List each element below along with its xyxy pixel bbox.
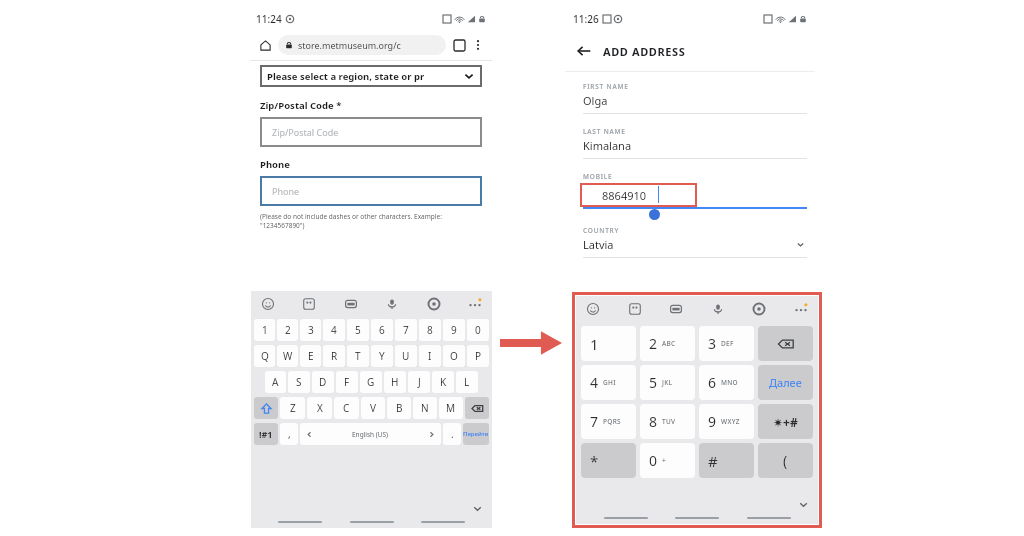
button[interactable]: 7 <box>395 319 417 341</box>
button[interactable]: Settings <box>750 300 768 318</box>
staticText: Z <box>290 401 296 415</box>
button[interactable]: M <box>439 397 463 419</box>
button[interactable]: , <box>280 423 298 445</box>
button[interactable]: ( <box>758 443 813 478</box>
button[interactable]: 5 <box>640 365 695 400</box>
staticText: 1 <box>590 334 599 354</box>
staticText: store.metmuseum.org/c <box>298 39 401 51</box>
button[interactable]: Emoji <box>584 300 602 318</box>
staticText: F <box>344 375 350 389</box>
button[interactable]: 1 <box>581 326 636 361</box>
button[interactable]: Stickers <box>626 300 644 318</box>
button[interactable]: 2 <box>640 326 695 361</box>
button[interactable]: G <box>360 371 382 393</box>
button[interactable]: Nav <box>421 521 465 523</box>
button[interactable]: 8 <box>419 319 441 341</box>
button[interactable]: S <box>288 371 310 393</box>
button[interactable]: * <box>581 443 636 478</box>
staticText: . <box>451 427 454 441</box>
button[interactable]: T <box>347 345 369 367</box>
button[interactable]: 3 <box>699 326 754 361</box>
staticText: Phone <box>272 185 300 197</box>
button[interactable]: !#1 <box>254 423 278 445</box>
button[interactable]: Emoji <box>259 295 277 313</box>
button[interactable]: Hide keyboard <box>796 497 810 511</box>
button[interactable]: V <box>361 397 385 419</box>
button[interactable]: Phone <box>260 176 482 206</box>
button[interactable]: Nav <box>747 517 791 519</box>
button[interactable]: store.metmuseum.org/c <box>278 35 446 55</box>
staticText: B <box>396 401 403 415</box>
button[interactable]: U <box>395 345 417 367</box>
button[interactable]: F <box>336 371 358 393</box>
button[interactable]: Stickers <box>300 295 318 313</box>
button[interactable]: B <box>387 397 411 419</box>
button[interactable]: Nav <box>604 517 648 519</box>
button[interactable]: 7 <box>581 404 636 439</box>
button[interactable]: I <box>419 345 441 367</box>
button[interactable]: Backspace <box>758 326 813 361</box>
button[interactable]: Далее <box>758 365 813 400</box>
button[interactable]: ✷+# <box>758 404 813 439</box>
button[interactable]: Q <box>254 345 275 367</box>
button[interactable]: Back <box>573 40 595 62</box>
button[interactable]: R <box>323 345 345 367</box>
button[interactable]: Home <box>256 36 274 54</box>
button[interactable]: P <box>467 345 489 367</box>
button[interactable]: 9 <box>443 319 465 341</box>
button[interactable]: More <box>466 295 484 313</box>
button[interactable]: Zip/Postal Code <box>260 117 482 147</box>
button[interactable]: 9 <box>699 404 754 439</box>
staticText: 0 <box>475 323 481 337</box>
button[interactable]: W <box>277 345 298 367</box>
button[interactable]: 4 <box>323 319 345 341</box>
button[interactable]: J <box>408 371 430 393</box>
button[interactable]: K <box>432 371 454 393</box>
button[interactable]: O <box>443 345 465 367</box>
button[interactable]: Tabs <box>451 37 467 53</box>
button[interactable]: Shift <box>254 397 278 419</box>
staticText: 8 <box>427 323 433 337</box>
button[interactable]: L <box>456 371 478 393</box>
button[interactable]: Voice input <box>709 300 727 318</box>
staticText: MNO <box>721 378 739 387</box>
button[interactable]: 3 <box>300 319 321 341</box>
button[interactable]: Nav <box>350 521 394 523</box>
staticText: Y <box>379 349 385 363</box>
button[interactable]: # <box>699 443 754 478</box>
button[interactable]: 0 <box>640 443 695 478</box>
button[interactable]: 8 <box>640 404 695 439</box>
button[interactable]: 0 <box>467 319 489 341</box>
button[interactable]: 2 <box>277 319 298 341</box>
button[interactable]: 1 <box>254 319 275 341</box>
button[interactable]: Nav <box>675 517 719 519</box>
button[interactable]: English (US) <box>300 423 441 445</box>
button[interactable]: C <box>334 397 359 419</box>
staticText: FIRST NAME <box>583 82 629 91</box>
button[interactable]: 6 <box>371 319 393 341</box>
button[interactable]: Clipboard <box>667 300 685 318</box>
button[interactable]: Settings <box>425 295 443 313</box>
button[interactable]: N <box>413 397 437 419</box>
button[interactable]: Перейти <box>463 423 489 445</box>
button[interactable]: 6 <box>699 365 754 400</box>
button[interactable]: Nav <box>278 521 322 523</box>
button[interactable]: Hide keyboard <box>470 501 484 515</box>
button[interactable]: 4 <box>581 365 636 400</box>
button[interactable]: 5 <box>347 319 369 341</box>
button[interactable]: Z <box>280 397 305 419</box>
button[interactable]: Y <box>371 345 393 367</box>
button[interactable]: H <box>384 371 406 393</box>
button[interactable]: Backspace <box>465 397 489 419</box>
button[interactable]: Voice input <box>383 295 401 313</box>
button[interactable]: . <box>443 423 461 445</box>
button[interactable]: E <box>300 345 321 367</box>
button[interactable]: More options <box>470 37 486 53</box>
button[interactable]: A <box>265 371 286 393</box>
button[interactable]: D <box>312 371 334 393</box>
button[interactable]: X <box>307 397 332 419</box>
staticText: 2 <box>649 334 658 353</box>
button[interactable]: More <box>792 300 810 318</box>
button[interactable]: Clipboard <box>342 295 360 313</box>
button[interactable]: Please select a region, state or pr <box>260 65 482 87</box>
